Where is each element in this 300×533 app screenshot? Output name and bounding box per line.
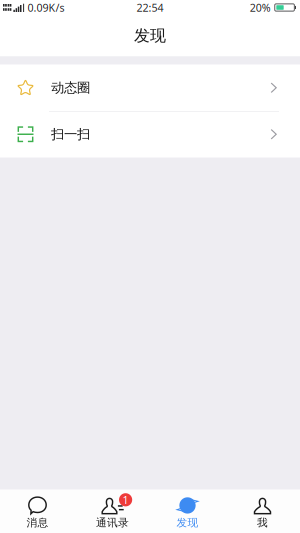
staticText: 动态圈: [51, 80, 90, 96]
staticText: 扫一扫: [51, 126, 90, 142]
button[interactable]: 发现: [150, 489, 225, 533]
staticText: 发现: [134, 26, 166, 46]
staticText: 我: [257, 516, 268, 529]
staticText: 消息: [26, 516, 48, 529]
staticText: 0.09K/s: [27, 0, 64, 15]
button[interactable]: 动态圈: [0, 64, 300, 111]
button[interactable]: 1: [75, 489, 150, 533]
staticText: 通讯录: [96, 516, 129, 529]
button[interactable]: 扫一扫: [0, 111, 300, 157]
staticText: 发现: [176, 516, 198, 529]
staticText: 20%: [250, 0, 271, 15]
staticText: 22:54: [136, 0, 163, 15]
button[interactable]: 我: [225, 489, 300, 533]
button[interactable]: 消息: [0, 489, 75, 533]
staticText: 1: [123, 493, 129, 507]
